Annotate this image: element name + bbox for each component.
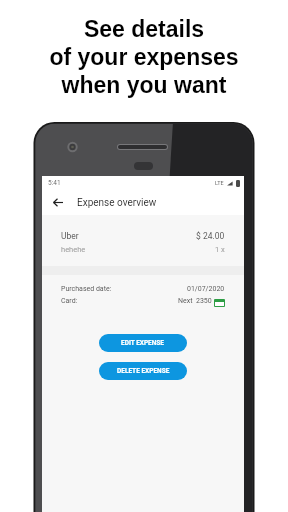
staticText: Expense overview [77,197,157,209]
staticText: Card: [61,297,78,305]
staticText: Next 2350 [178,297,212,305]
button[interactable]: Back [45,190,70,215]
staticText: 5:41 [48,179,61,187]
staticText: 01/07/2020 [187,285,225,293]
staticText: hehehe [61,245,86,254]
staticText: LTE [215,180,224,186]
staticText: See details of your expenses when you wa… [49,16,239,98]
staticText: DELETE EXPENSE [117,367,170,375]
staticText: Purchased date: [61,285,112,293]
staticText: EDIT EXPENSE [121,339,165,347]
staticText: 1 x [215,245,225,254]
staticText: $ 24.00 [196,231,225,241]
button[interactable]: EDIT EXPENSE [99,334,187,352]
button[interactable]: DELETE EXPENSE [99,362,187,380]
staticText: Uber [61,231,79,241]
